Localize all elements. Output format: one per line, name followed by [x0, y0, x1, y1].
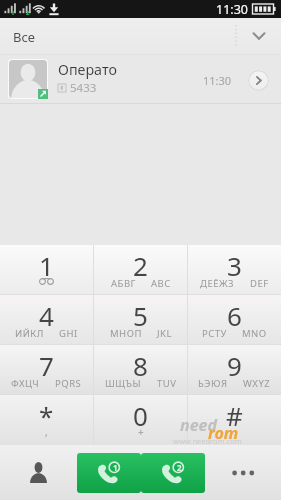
- staticText: www.needrom.com: [173, 436, 242, 446]
- staticText: Все: [13, 28, 35, 46]
- staticText: WXYZ: [243, 377, 271, 390]
- staticText: 5: [133, 298, 148, 333]
- staticText: АБВГ: [111, 277, 136, 290]
- staticText: #: [226, 398, 243, 433]
- staticText: 4: [39, 298, 54, 333]
- staticText: 5433: [70, 80, 97, 96]
- staticText: 8: [133, 348, 148, 383]
- staticText: МНОП: [110, 327, 142, 340]
- staticText: 1: [39, 248, 54, 283]
- staticText: GHI: [59, 327, 78, 340]
- staticText: need: [180, 414, 217, 436]
- staticText: ДЕЁЖЗ: [200, 277, 235, 290]
- button[interactable]: Операто: [0, 55, 281, 103]
- staticText: 1: [113, 462, 118, 473]
- staticText: TUV: [157, 377, 177, 390]
- button[interactable]: #: [188, 395, 281, 445]
- button[interactable]: 2: [94, 245, 187, 295]
- button[interactable]: Call with SIM 2: [141, 453, 205, 493]
- staticText: ,: [45, 425, 48, 439]
- staticText: 7: [39, 348, 54, 383]
- staticText: 6: [227, 298, 242, 333]
- staticText: ЬЭЮЯ: [198, 377, 228, 390]
- button[interactable]: Все: [0, 18, 281, 55]
- staticText: ИЙКЛ: [15, 327, 44, 340]
- staticText: 2: [133, 248, 148, 283]
- button[interactable]: 5: [94, 295, 187, 345]
- staticText: РСТУ: [202, 327, 227, 340]
- staticText: ABC: [151, 277, 171, 290]
- button[interactable]: 4: [0, 295, 93, 345]
- staticText: ШЩЪЫ: [105, 377, 142, 390]
- button[interactable]: 1: [0, 245, 93, 295]
- button[interactable]: 3: [188, 245, 281, 295]
- button[interactable]: 0: [94, 395, 187, 445]
- staticText: +: [138, 425, 144, 439]
- staticText: 2: [177, 462, 182, 473]
- staticText: JKL: [157, 327, 172, 340]
- button[interactable]: Call with SIM 1: [77, 453, 141, 493]
- button[interactable]: 8: [94, 345, 187, 395]
- button[interactable]: 7: [0, 345, 93, 395]
- button[interactable]: More options: [205, 445, 281, 500]
- staticText: 0: [133, 398, 148, 433]
- staticText: 11:30: [216, 1, 248, 18]
- staticText: ФХЦЧ: [11, 377, 40, 390]
- staticText: MNO: [242, 327, 267, 340]
- staticText: 2: [26, 9, 30, 17]
- button[interactable]: 9: [188, 345, 281, 395]
- staticText: *: [39, 398, 54, 433]
- staticText: 9: [227, 348, 242, 383]
- staticText: 1: [11, 9, 15, 17]
- staticText: 11:30: [203, 73, 232, 88]
- button[interactable]: Call details: [248, 70, 269, 91]
- staticText: Операто: [58, 60, 117, 79]
- button[interactable]: Contacts: [0, 445, 77, 500]
- button[interactable]: 6: [188, 295, 281, 345]
- staticText: 3: [227, 248, 242, 283]
- button[interactable]: *: [0, 395, 93, 445]
- staticText: DEF: [250, 277, 269, 290]
- staticText: PQRS: [55, 377, 82, 390]
- staticText: rom: [208, 422, 239, 444]
